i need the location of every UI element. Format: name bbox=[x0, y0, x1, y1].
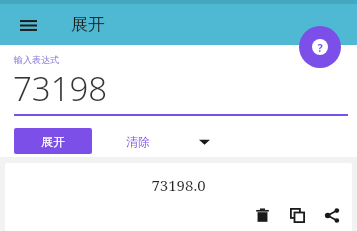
button[interactable]: 展开 bbox=[14, 128, 92, 154]
button[interactable]: Copy bbox=[283, 201, 311, 229]
staticText: 73198 bbox=[13, 66, 108, 111]
staticText: 清除 bbox=[126, 134, 150, 149]
button[interactable]: 清除 bbox=[109, 128, 167, 154]
staticText: 输入表达式 bbox=[14, 54, 59, 65]
staticText: 展开 bbox=[71, 14, 105, 35]
staticText: 73198.0 bbox=[151, 175, 206, 195]
button[interactable]: Delete bbox=[248, 201, 276, 229]
staticText: ? bbox=[317, 40, 323, 55]
button[interactable]: More options bbox=[191, 128, 217, 154]
button[interactable]: Help bbox=[299, 26, 341, 68]
staticText: 展开 bbox=[41, 134, 65, 149]
button[interactable]: Share bbox=[318, 201, 346, 229]
button[interactable]: Menu bbox=[11, 8, 45, 42]
